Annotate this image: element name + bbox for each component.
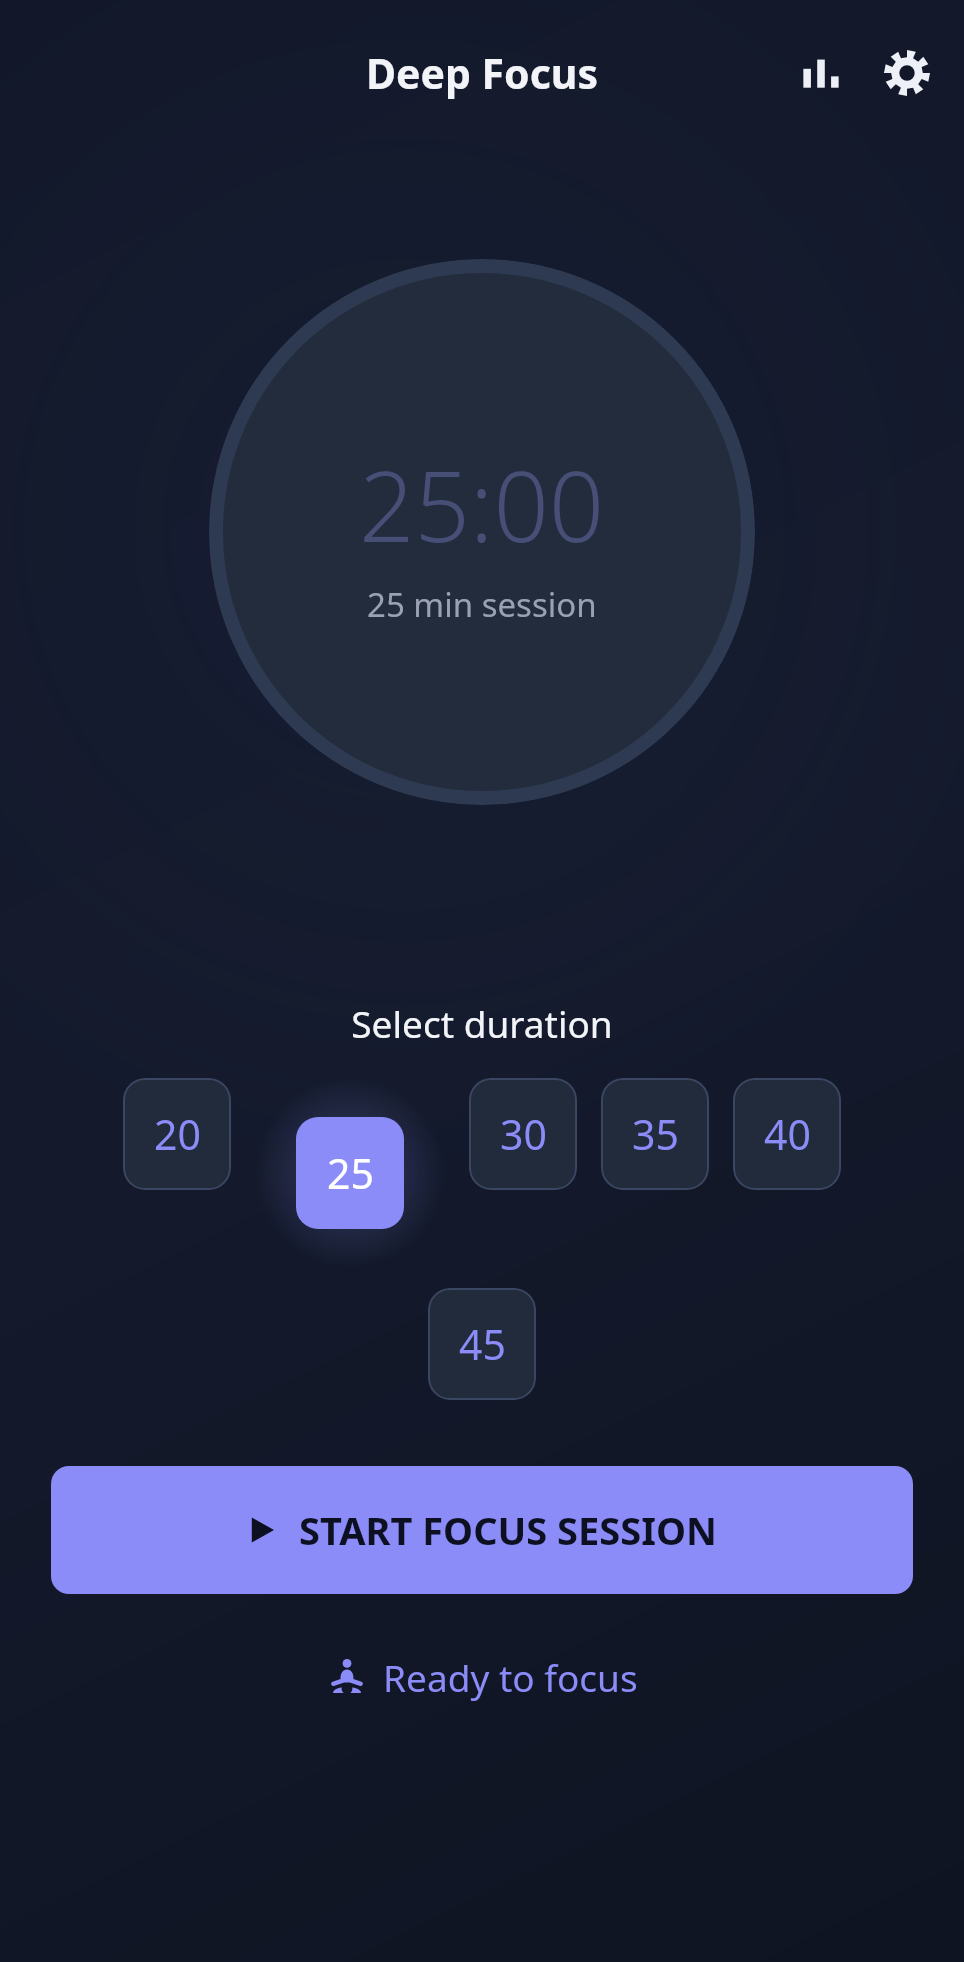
staticText: 35 — [632, 1106, 679, 1162]
staticText: Select duration — [0, 998, 964, 1048]
button[interactable]: 25 — [296, 1117, 404, 1229]
staticText: 40 — [764, 1106, 811, 1162]
button[interactable]: START FOCUS SESSION — [51, 1466, 913, 1594]
staticText: START FOCUS SESSION — [299, 1504, 717, 1556]
button[interactable]: Settings — [870, 36, 944, 110]
button[interactable]: 30 — [469, 1078, 577, 1190]
staticText: 30 — [500, 1106, 547, 1162]
button[interactable]: 35 — [601, 1078, 709, 1190]
staticText: 25 min session — [367, 582, 597, 627]
staticText: 25 — [327, 1145, 374, 1201]
button[interactable]: 20 — [123, 1078, 231, 1190]
staticText: 20 — [154, 1106, 201, 1162]
button[interactable]: 40 — [733, 1078, 841, 1190]
button[interactable]: Statistics — [784, 36, 858, 110]
staticText: 45 — [459, 1316, 506, 1372]
staticText: Deep Focus — [366, 45, 599, 101]
staticText: 25:00 — [359, 438, 605, 570]
button[interactable]: Ready to focus — [0, 1652, 964, 1702]
staticText: Ready to focus — [383, 1652, 638, 1702]
button[interactable]: 45 — [428, 1288, 536, 1400]
button[interactable]: Focus timer 25:00 — [209, 259, 755, 805]
